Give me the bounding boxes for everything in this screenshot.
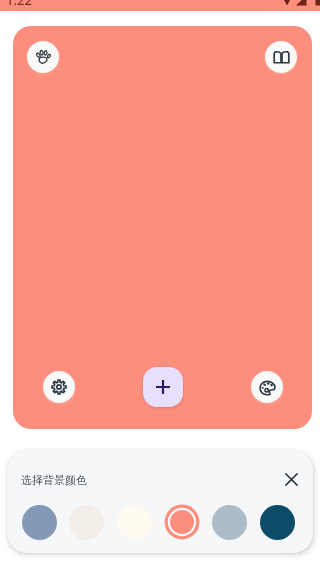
button[interactable]: Add: [143, 367, 183, 407]
button[interactable]: Colour option: [67, 503, 105, 541]
button[interactable]: Settings: [43, 371, 75, 403]
staticText: 1:22: [6, 0, 32, 9]
staticText: 选择背景颜色: [21, 473, 87, 487]
button[interactable]: Colour option: [210, 503, 248, 541]
button[interactable]: Palette: [251, 371, 283, 403]
button[interactable]: Colour option: [163, 503, 201, 541]
button[interactable]: Close: [279, 467, 303, 491]
button[interactable]: Pets: [27, 41, 59, 73]
button[interactable]: Colour option: [20, 503, 58, 541]
button[interactable]: Colour option: [115, 503, 153, 541]
button[interactable]: Reading list: [265, 41, 297, 73]
button[interactable]: Colour option: [258, 503, 296, 541]
